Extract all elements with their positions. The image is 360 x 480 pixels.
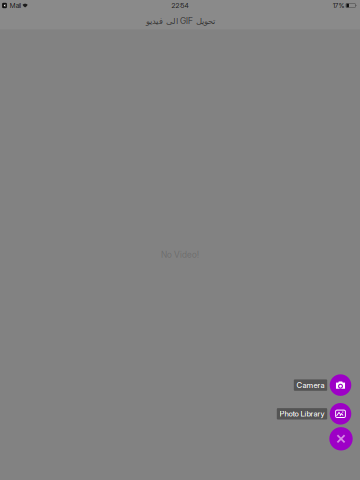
staticText: Photo Library <box>279 409 324 418</box>
staticText: Camera <box>296 380 324 390</box>
staticText: 17% <box>333 1 345 10</box>
button[interactable]: Photo Library <box>277 408 327 419</box>
staticText: تحويل GIF الى فيديو <box>145 16 214 26</box>
staticText: Mail <box>10 1 21 10</box>
button[interactable]: Photo Library <box>330 403 351 425</box>
button[interactable]: Camera <box>330 374 351 396</box>
staticText: No Video! <box>161 249 199 260</box>
staticText: 22:54 <box>171 1 188 10</box>
button[interactable]: Camera <box>294 379 327 391</box>
button[interactable]: Close menu <box>329 427 353 450</box>
